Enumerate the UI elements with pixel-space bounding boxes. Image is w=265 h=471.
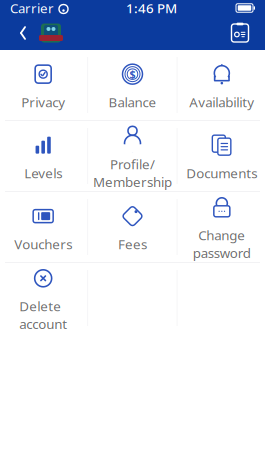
staticText: Profile/ [110, 155, 155, 173]
button[interactable]: Fees [88, 192, 177, 262]
button[interactable]: Vouchers [0, 192, 87, 262]
staticText: Balance [108, 93, 156, 111]
button[interactable]: Privacy [0, 50, 87, 120]
staticText: $ [129, 67, 135, 81]
button[interactable]: Profile/ [88, 121, 177, 191]
button[interactable]: Delete account [0, 263, 87, 333]
staticText: 1:46 PM [126, 0, 177, 17]
staticText: Carrier [10, 0, 54, 17]
staticText: password [193, 244, 251, 262]
staticText: Change [198, 226, 245, 244]
button[interactable]: $ [88, 50, 177, 120]
staticText: Availability [189, 93, 254, 111]
staticText: Privacy [21, 93, 65, 111]
button[interactable]: Membership card [223, 16, 257, 50]
button[interactable]: Documents [178, 121, 265, 191]
button[interactable]: Levels [0, 121, 87, 191]
staticText: Documents [186, 164, 257, 182]
staticText: Vouchers [14, 235, 72, 253]
staticText: Delete account [19, 297, 67, 333]
staticText: Fees [118, 235, 147, 253]
button[interactable]: Change [178, 192, 265, 262]
button[interactable]: Back [8, 16, 38, 50]
staticText: Membership [93, 173, 172, 191]
staticText: Levels [24, 164, 62, 182]
button[interactable]: Availability [178, 50, 265, 120]
